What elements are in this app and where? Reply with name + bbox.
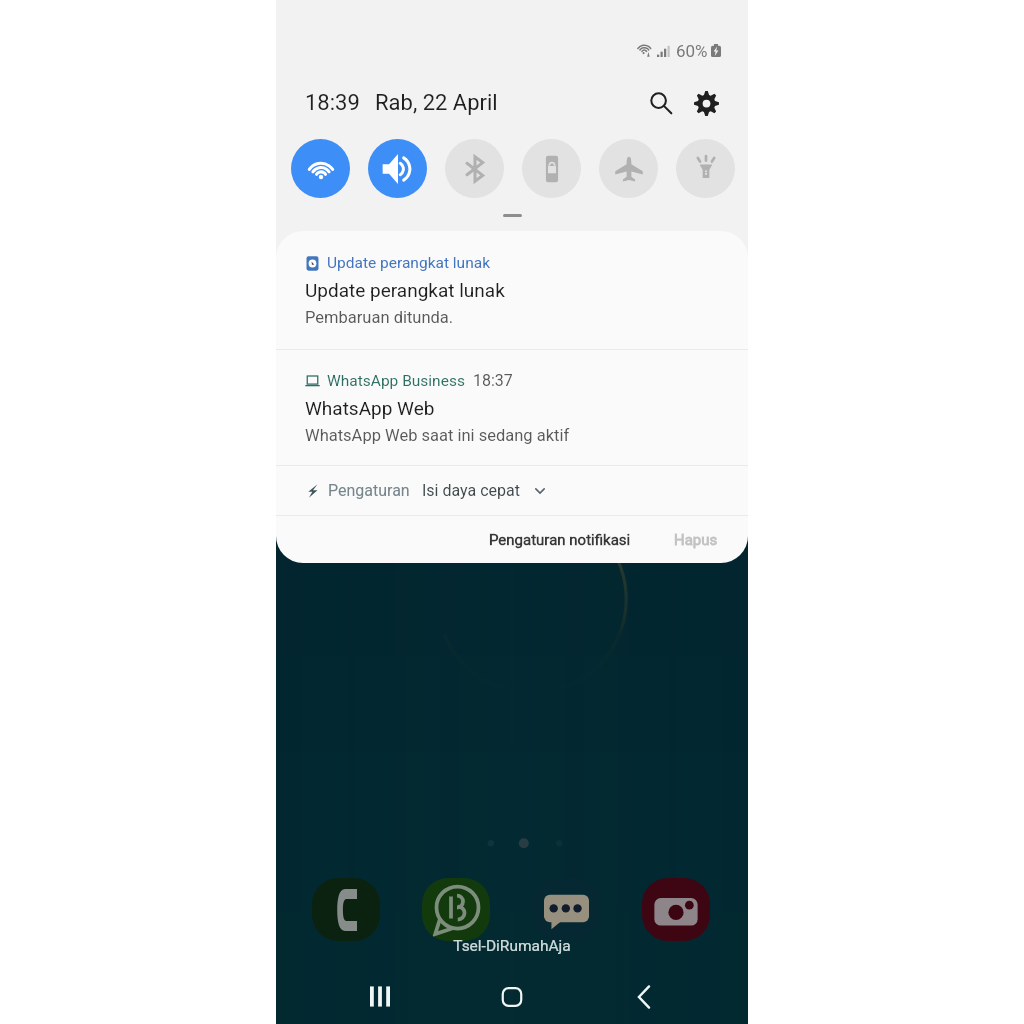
button[interactable]: WhatsApp Business — [276, 350, 748, 465]
button[interactable]: Airplane mode — [599, 139, 658, 198]
button[interactable]: Hapus — [668, 523, 724, 557]
button[interactable]: Phone — [312, 878, 380, 941]
button[interactable]: Settings — [686, 83, 726, 123]
staticText: Update perangkat lunak — [327, 254, 490, 272]
staticText: Pengaturan notifikasi — [489, 531, 631, 549]
button[interactable]: WhatsApp Business — [422, 878, 490, 941]
button[interactable]: Update perangkat lunak — [276, 231, 748, 349]
staticText: Pengaturan — [328, 481, 410, 500]
staticText: Tsel-DiRumahAja — [276, 937, 748, 955]
button[interactable]: Camera — [642, 878, 710, 941]
button[interactable]: Mobile data — [522, 139, 581, 198]
staticText: 60% — [676, 41, 708, 61]
button[interactable]: Pengaturan notifikasi — [483, 523, 637, 557]
staticText: WhatsApp Web saat ini sedang aktif — [305, 426, 570, 445]
button[interactable]: Flashlight — [676, 139, 735, 198]
button[interactable]: Home — [446, 968, 578, 1024]
button[interactable]: Wi-Fi — [291, 139, 350, 198]
button[interactable]: Search — [641, 83, 681, 123]
staticText: Pembaruan ditunda. — [305, 308, 454, 327]
button[interactable]: Pengaturan — [276, 466, 748, 515]
button[interactable]: Back — [578, 968, 710, 1024]
staticText: WhatsApp Web — [305, 397, 435, 419]
button[interactable]: Sound — [368, 139, 427, 198]
button[interactable]: Messages — [532, 878, 600, 941]
staticText: 18:39 — [305, 90, 360, 116]
staticText: Isi daya cepat — [422, 481, 520, 500]
staticText: Hapus — [674, 531, 718, 549]
staticText: Rab, 22 April — [375, 90, 498, 116]
staticText: 18:37 — [473, 371, 513, 390]
button[interactable]: Bluetooth — [445, 139, 504, 198]
staticText: Update perangkat lunak — [305, 279, 505, 301]
staticText: WhatsApp Business — [327, 372, 465, 390]
button[interactable]: Recent apps — [314, 968, 446, 1024]
